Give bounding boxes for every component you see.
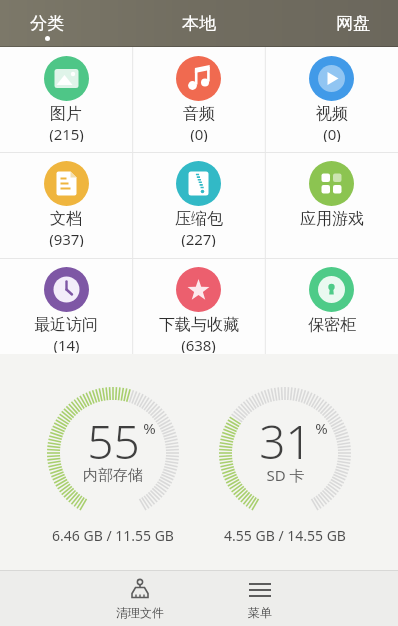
staticText: 图片 <box>50 104 82 124</box>
button[interactable]: 视频 <box>265 47 398 152</box>
staticText: 内部存储 <box>83 466 143 485</box>
staticText: (215) <box>49 124 84 142</box>
staticText: 6.46 GB / 11.55 GB <box>23 526 203 545</box>
button[interactable]: 压缩包 <box>132 152 265 258</box>
button[interactable]: 分类 <box>30 0 64 47</box>
staticText: 压缩包 <box>175 209 223 229</box>
button[interactable]: 下载与收藏 <box>132 258 265 354</box>
staticText: 31 <box>259 410 312 473</box>
staticText: 下载与收藏 <box>159 315 239 335</box>
staticText: 音频 <box>183 104 215 124</box>
staticText: 4.55 GB / 14.55 GB <box>195 526 375 545</box>
staticText: (0) <box>323 124 341 142</box>
staticText: % <box>315 418 328 438</box>
button[interactable]: 音频 <box>132 47 265 152</box>
staticText: 网盘 <box>336 13 370 34</box>
button[interactable]: 保密柜 <box>265 258 398 354</box>
staticText: 55 <box>87 410 140 473</box>
staticText: (638) <box>181 335 216 353</box>
staticText: 最近访问 <box>34 315 98 335</box>
staticText: 文档 <box>50 209 82 229</box>
staticText: 清理文件 <box>116 605 164 620</box>
staticText: (0) <box>190 124 208 142</box>
staticText: (937) <box>49 229 84 247</box>
button[interactable]: 最近访问 <box>0 258 132 354</box>
staticText: (227) <box>181 229 216 247</box>
staticText: (14) <box>53 335 80 353</box>
button[interactable]: 图片 <box>0 47 132 152</box>
staticText: 保密柜 <box>308 315 356 335</box>
button[interactable]: 网盘 <box>336 0 370 47</box>
button[interactable]: 本地 <box>182 0 216 47</box>
staticText: 应用游戏 <box>300 209 364 229</box>
staticText: 分类 <box>30 13 64 34</box>
staticText: 视频 <box>316 104 348 124</box>
button[interactable]: 清理文件 <box>103 571 177 626</box>
staticText: 菜单 <box>248 605 272 620</box>
staticText: SD 卡 <box>266 465 305 485</box>
button[interactable]: 文档 <box>0 152 132 258</box>
staticText: % <box>143 418 156 438</box>
staticText: 本地 <box>182 13 216 34</box>
button[interactable]: 应用游戏 <box>265 152 398 258</box>
button[interactable]: 菜单 <box>223 571 297 626</box>
